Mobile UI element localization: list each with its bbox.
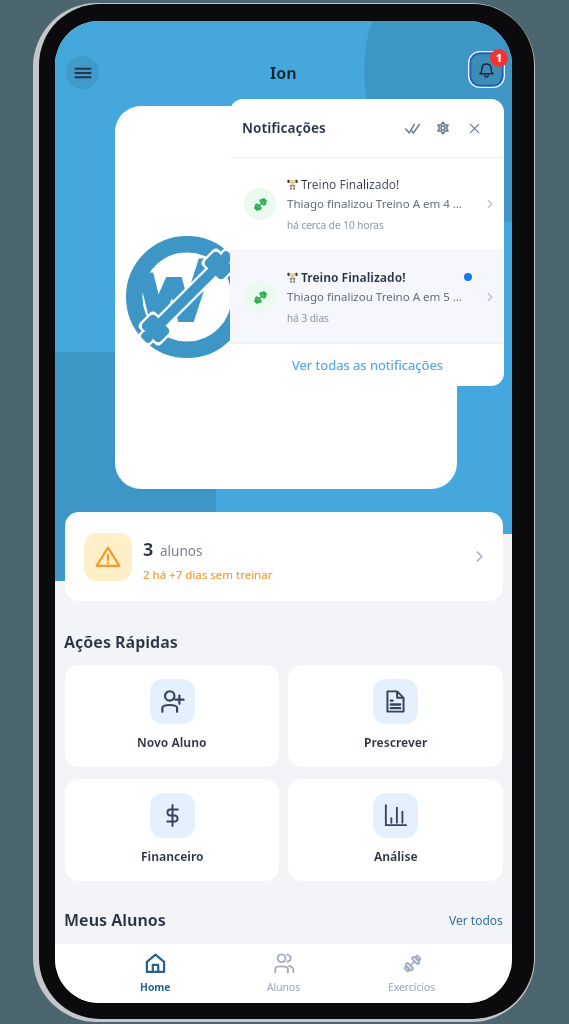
staticText: 3 [143, 537, 154, 562]
button[interactable]: Novo Aluno [65, 665, 279, 767]
button[interactable]: Ver todas as notificações [230, 344, 504, 386]
staticText: Análise [374, 848, 418, 864]
staticText: há 3 dias [287, 311, 329, 325]
button[interactable]: Home [91, 944, 220, 1003]
staticText: Exercícios [388, 980, 436, 994]
button[interactable]: Mark all as read [401, 117, 423, 139]
button[interactable]: Alunos [220, 944, 348, 1003]
button[interactable]: Financeiro [65, 779, 279, 881]
staticText: alunos [160, 542, 203, 560]
staticText: Treino Finalizado! [301, 269, 406, 285]
button[interactable]: Notifications [468, 51, 505, 88]
staticText: Ver todas as notificações [292, 356, 443, 374]
staticText: Ion [270, 62, 297, 84]
staticText: há cerca de 10 horas [287, 218, 384, 232]
button[interactable]: Menu [66, 56, 99, 89]
staticText: Ações Rápidas [64, 631, 178, 653]
staticText: Alunos [267, 980, 301, 994]
button[interactable]: Settings [432, 117, 454, 139]
button[interactable]: Análise [288, 779, 503, 881]
button[interactable]: Prescrever [288, 665, 503, 767]
staticText: Thiago finalizou Treino A em 5 … [287, 289, 462, 305]
staticText: 1 [496, 51, 503, 65]
button[interactable]: Treino Finalizado! [230, 251, 504, 343]
staticText: 2 há +7 dias sem treinar [143, 567, 273, 583]
staticText: Treino Finalizado! [301, 176, 400, 192]
staticText: Ver todos [449, 912, 503, 928]
staticText: Notificações [242, 119, 326, 137]
button[interactable]: Close [463, 117, 485, 139]
button[interactable]: Exercícios [348, 944, 476, 1003]
staticText: Thiago finalizou Treino A em 4 … [287, 196, 462, 212]
button[interactable]: Ver todos [449, 912, 503, 928]
button[interactable]: Treino Finalizado! [230, 158, 504, 250]
staticText: Novo Aluno [137, 734, 207, 750]
staticText: Financeiro [141, 848, 204, 864]
button[interactable]: 3 [65, 512, 503, 601]
staticText: Meus Alunos [64, 909, 166, 931]
staticText: Home [140, 980, 171, 994]
staticText: Prescrever [364, 734, 428, 750]
